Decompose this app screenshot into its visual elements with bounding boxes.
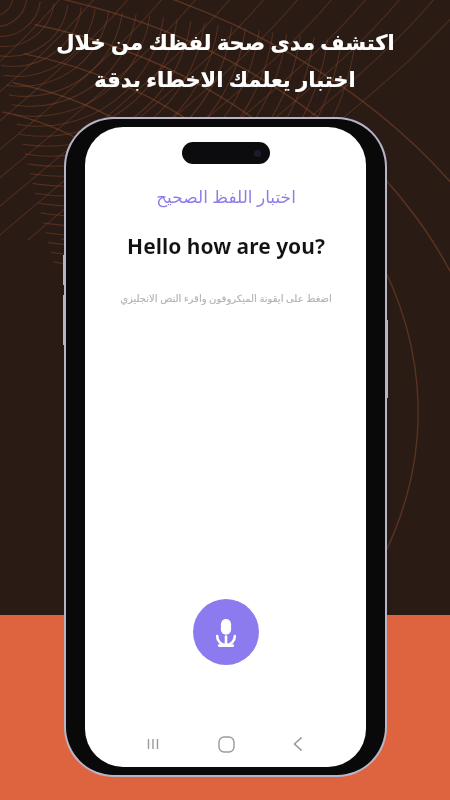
button[interactable]: Record pronunciation (193, 599, 259, 665)
staticText: اختبار يعلمك الاخطاء بدقة (94, 65, 356, 94)
button[interactable]: Home (206, 724, 246, 764)
staticText: اضغط على ايقونة الميكروفون واقرء النص ال… (120, 291, 332, 305)
button[interactable]: Recents (133, 724, 173, 764)
staticText: اكتشف مدى صحة لفظك من خلال (56, 28, 395, 57)
staticText: اختبار اللفظ الصحيح (156, 185, 296, 208)
button[interactable]: Back (278, 724, 318, 764)
staticText: Hello how are you? (127, 232, 325, 261)
